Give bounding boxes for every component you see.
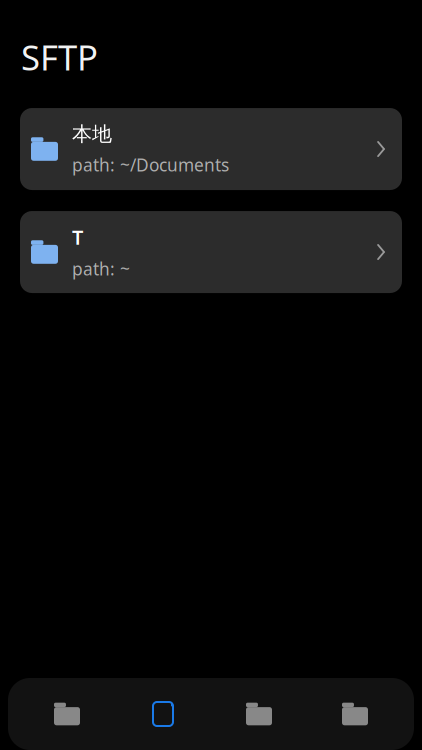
button[interactable]: Remote: [211, 687, 307, 741]
button[interactable]: Documents: [115, 687, 211, 741]
staticText: path: ~: [72, 257, 130, 280]
staticText: T: [72, 224, 83, 250]
button[interactable]: Settings: [307, 687, 403, 741]
staticText: 本地: [72, 122, 112, 146]
staticText: SFTP: [21, 34, 98, 80]
button[interactable]: 本地: [20, 108, 402, 190]
button[interactable]: T: [20, 211, 402, 293]
staticText: path: ~/Documents: [72, 153, 229, 176]
button[interactable]: Files: [19, 687, 115, 741]
